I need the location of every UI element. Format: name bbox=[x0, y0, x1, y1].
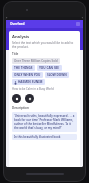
staticText: Title bbox=[12, 52, 19, 56]
button[interactable]: ONLY WHEN YOU bbox=[12, 72, 43, 78]
staticText: ONLY WHEN YOU bbox=[14, 73, 41, 77]
staticText: HAEMIN SUNIM bbox=[18, 80, 43, 84]
staticText: 'Universal truths, beautifully expressed… bbox=[14, 114, 75, 130]
button[interactable]: 'Universal truths, beautifully expressed… bbox=[12, 112, 77, 132]
button[interactable]: More options bbox=[76, 22, 80, 26]
staticText: Over Three Million Copies Sold bbox=[14, 59, 58, 63]
staticText: In this beautifully illustrated book bbox=[14, 135, 75, 139]
button[interactable]: THE THINGS bbox=[12, 65, 35, 71]
button[interactable]: Over Three Million Copies Sold bbox=[12, 58, 60, 64]
staticText: YOU CAN SEE bbox=[39, 66, 60, 70]
staticText: THE THINGS bbox=[14, 66, 33, 70]
button[interactable]: SLOW DOWN bbox=[45, 72, 69, 78]
button[interactable]: In this beautifully illustrated book bbox=[12, 134, 77, 140]
button[interactable]: Add bbox=[12, 94, 21, 103]
button[interactable]: YOU CAN SEE bbox=[37, 65, 62, 71]
staticText: SLOW DOWN bbox=[47, 73, 67, 77]
staticText: Analysis bbox=[12, 34, 30, 40]
staticText: Overfeed bbox=[10, 22, 25, 26]
button[interactable]: HAEMIN SUNIM bbox=[12, 79, 45, 85]
button[interactable]: Overfeed bbox=[9, 21, 26, 27]
staticText: How to be Calm in a Busy World bbox=[12, 87, 54, 91]
staticText: Description bbox=[12, 106, 29, 110]
staticText: Select the text which you would like to … bbox=[12, 41, 77, 49]
button[interactable]: Edit bbox=[25, 94, 34, 103]
